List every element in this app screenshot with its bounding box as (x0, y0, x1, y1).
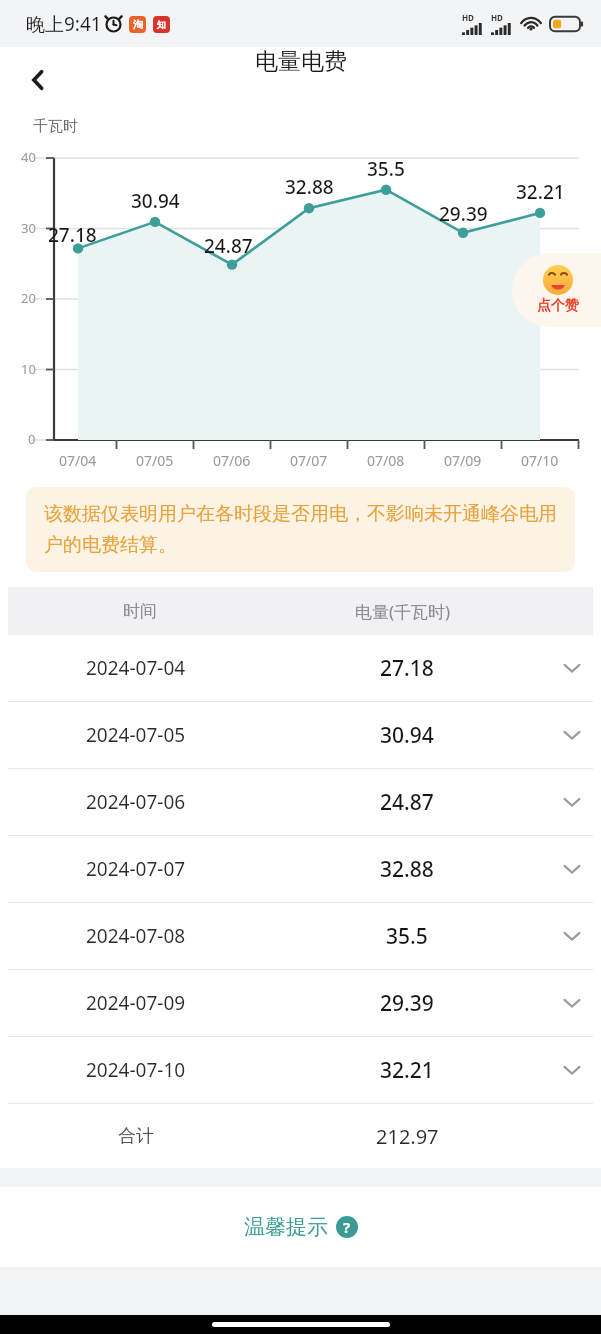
staticText: 电量(千瓦时) (355, 600, 451, 623)
staticText: 电量电费 (255, 47, 347, 76)
staticText: 30.94 (380, 721, 434, 750)
button[interactable]: 点个赞 (512, 253, 601, 327)
button[interactable]: Back (10, 52, 66, 108)
button[interactable]: 2024-07-06 (0, 769, 601, 835)
staticText: HD (491, 12, 503, 23)
staticText: 2024-07-06 (86, 789, 186, 815)
staticText: 时间 (123, 601, 157, 622)
staticText: 24.87 (380, 788, 434, 817)
staticText: 该数据仅表明用户在各时段是否用电，不影响未开通峰谷电用户的电费结算。 (44, 502, 557, 557)
staticText: 10 (21, 360, 36, 378)
staticText: 29.39 (439, 201, 488, 227)
staticText: 07/05 (136, 451, 174, 470)
button[interactable]: 2024-07-05 (0, 702, 601, 768)
staticText: 32.21 (380, 1056, 434, 1085)
staticText: 2024-07-08 (86, 923, 186, 949)
button[interactable]: 2024-07-10 (0, 1037, 601, 1103)
staticText: 07/06 (213, 451, 251, 470)
staticText: 30.94 (131, 188, 180, 214)
button[interactable]: 2024-07-04 (0, 635, 601, 701)
staticText: HD (462, 12, 474, 23)
staticText: 点个赞 (537, 297, 579, 315)
staticText: 212.97 (376, 1123, 439, 1150)
staticText: 千瓦时 (33, 117, 78, 136)
staticText: 2024-07-05 (86, 722, 186, 748)
staticText: 30 (21, 219, 36, 237)
button[interactable]: 温馨提示 (232, 1206, 370, 1248)
staticText: 合计 (118, 1125, 154, 1148)
staticText: 07/10 (521, 451, 559, 470)
staticText: 32.88 (285, 174, 334, 200)
staticText: 2024-07-07 (86, 856, 186, 882)
staticText: 32.88 (380, 855, 434, 884)
staticText: 2024-07-04 (86, 655, 186, 681)
staticText: 35.5 (367, 156, 405, 182)
staticText: 07/08 (367, 451, 405, 470)
staticText: 知 (157, 19, 166, 30)
staticText: 07/04 (59, 451, 97, 470)
staticText: 07/09 (444, 451, 482, 470)
staticText: 2024-07-10 (86, 1057, 186, 1083)
staticText: 29.39 (380, 989, 434, 1018)
button[interactable]: 2024-07-09 (0, 970, 601, 1036)
staticText: 淘 (133, 18, 143, 31)
button[interactable]: 2024-07-08 (0, 903, 601, 969)
staticText: 温馨提示 (244, 1214, 328, 1240)
staticText: 24.87 (204, 233, 253, 259)
button[interactable]: 2024-07-07 (0, 836, 601, 902)
staticText: 晚上9:41 (26, 11, 102, 37)
staticText: 20 (21, 289, 36, 307)
staticText: 07/07 (290, 451, 328, 470)
staticText: ? (343, 1217, 351, 1237)
staticText: 0 (28, 430, 36, 448)
staticText: 27.18 (380, 654, 434, 683)
staticText: 35.5 (386, 922, 428, 951)
staticText: 27.18 (48, 222, 97, 248)
staticText: 2024-07-09 (86, 990, 186, 1016)
staticText: 32.21 (516, 179, 565, 205)
staticText: 40 (21, 148, 36, 166)
